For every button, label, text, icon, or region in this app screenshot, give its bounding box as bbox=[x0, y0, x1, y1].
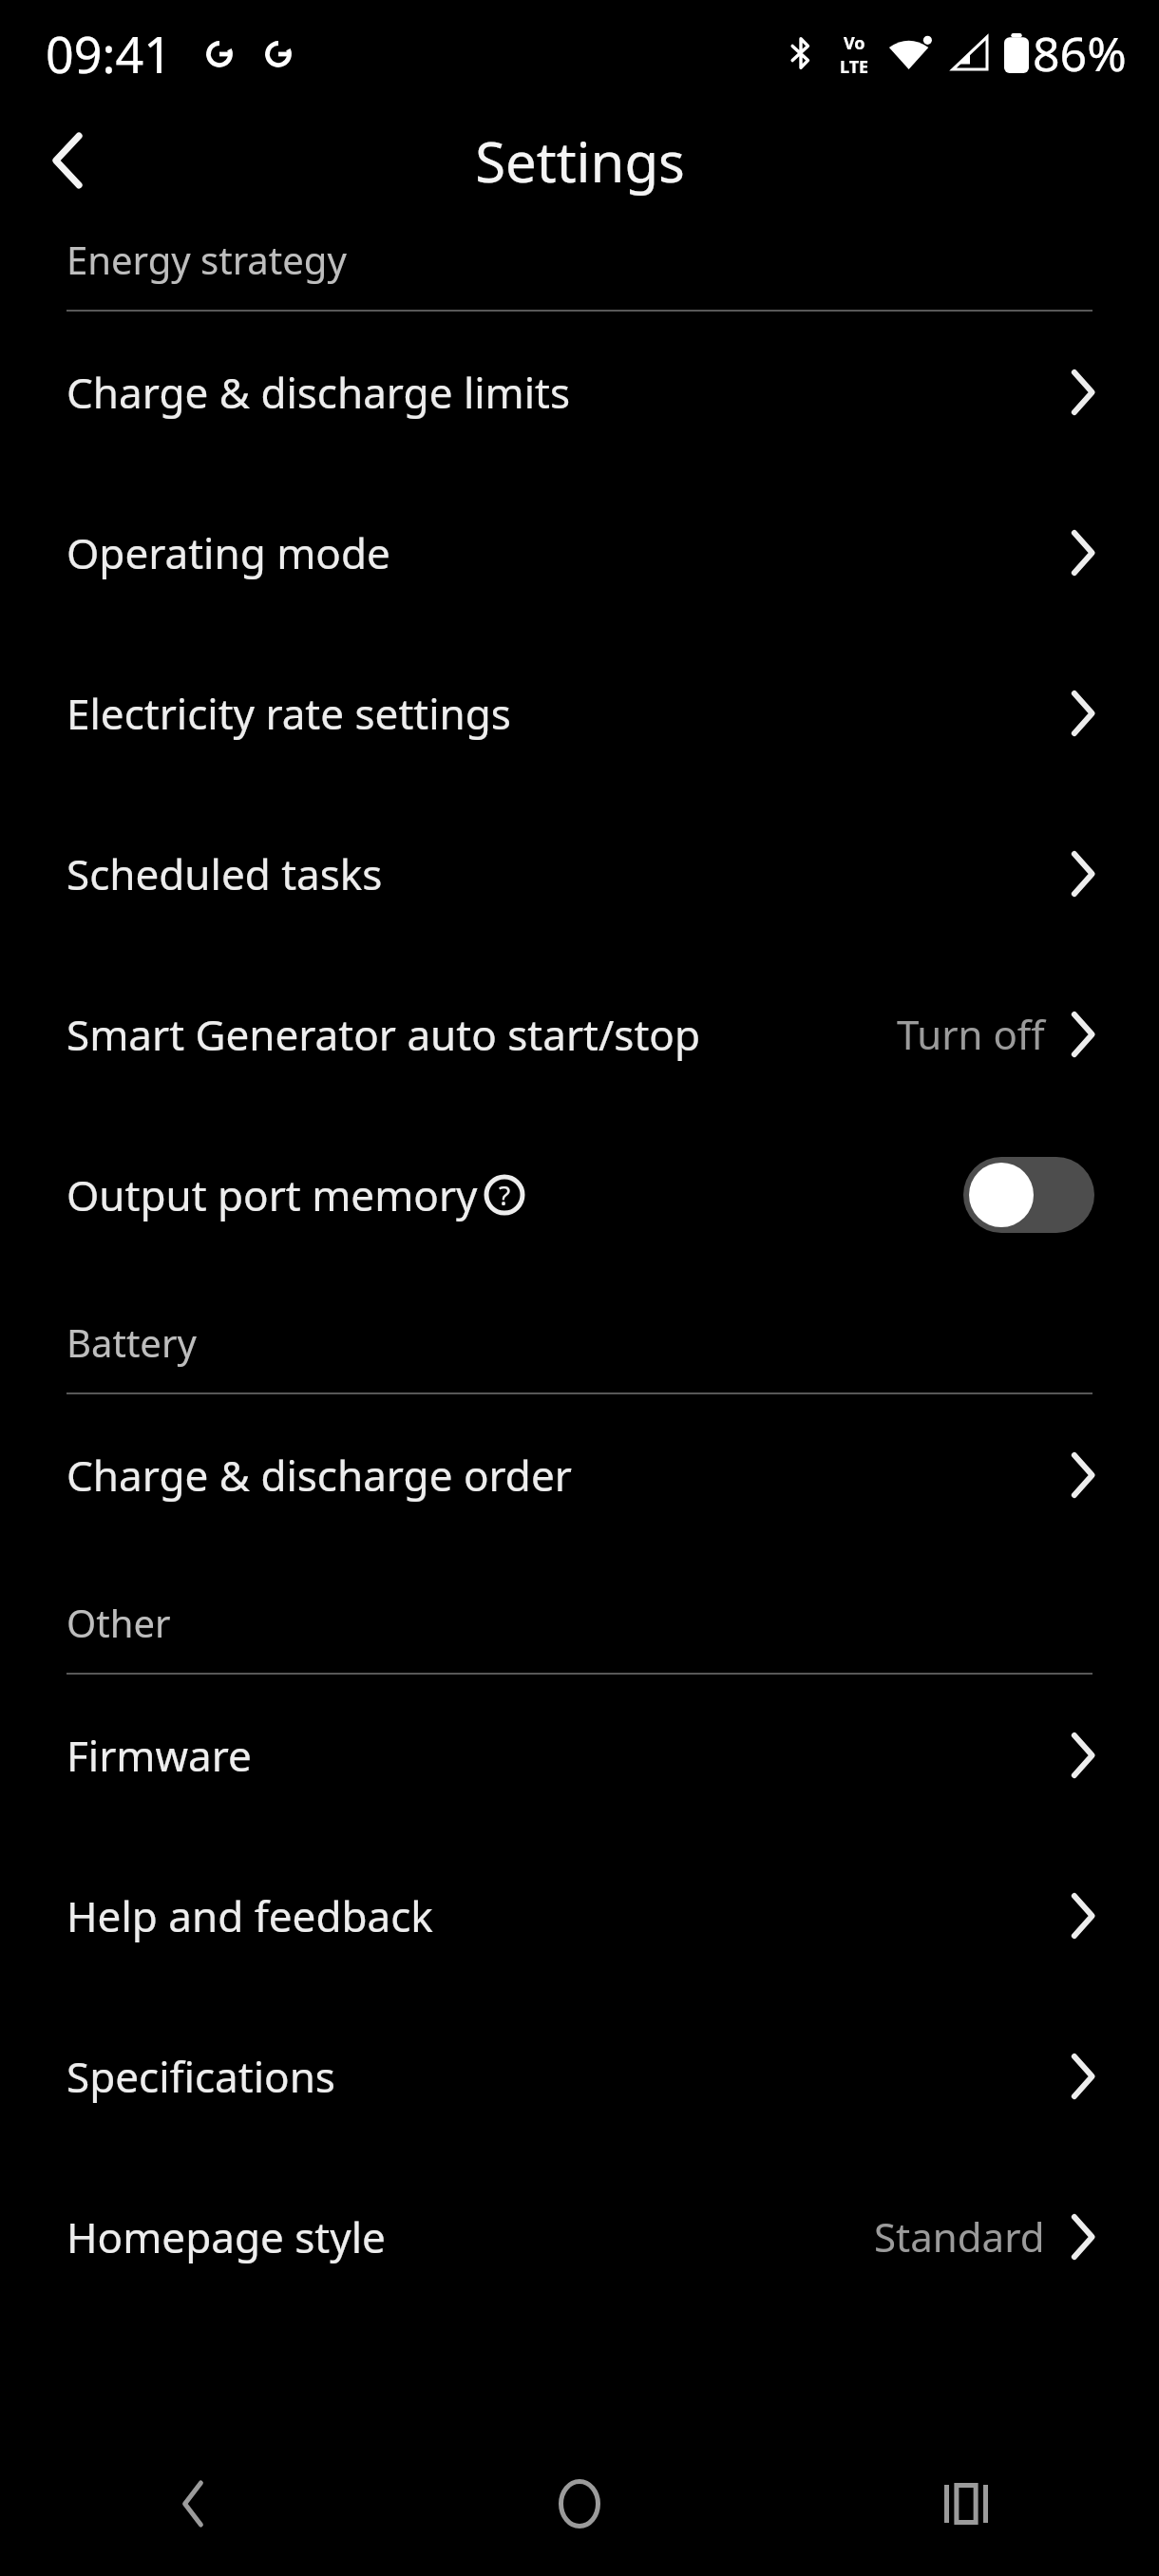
staticText: Electricity rate settings bbox=[66, 685, 511, 742]
staticText: Scheduled tasks bbox=[66, 845, 383, 902]
staticText: Battery bbox=[66, 1316, 197, 1368]
button[interactable]: Operating mode bbox=[0, 472, 1159, 633]
button[interactable]: Scheduled tasks bbox=[0, 793, 1159, 954]
button[interactable]: Smart Generator auto start/stop bbox=[0, 954, 1159, 1114]
button[interactable]: Recent apps bbox=[772, 2432, 1159, 2576]
staticText: Specifications bbox=[66, 2048, 335, 2105]
staticText: Homepage style bbox=[66, 2208, 386, 2265]
button[interactable]: Back bbox=[19, 112, 116, 209]
staticText: Firmware bbox=[66, 1727, 252, 1784]
staticText: Other bbox=[66, 1597, 171, 1648]
staticText: Vo bbox=[844, 31, 865, 55]
staticText: Standard bbox=[874, 2209, 1045, 2263]
staticText: 09:41 bbox=[46, 20, 172, 87]
button[interactable]: Electricity rate settings bbox=[0, 633, 1159, 793]
staticText: Settings bbox=[475, 123, 685, 199]
staticText: Output port memory bbox=[66, 1166, 478, 1223]
button[interactable]: Charge & discharge order bbox=[0, 1394, 1159, 1555]
button[interactable]: Output port memory bbox=[0, 1114, 1159, 1275]
staticText: Charge & discharge order bbox=[66, 1447, 572, 1504]
button[interactable]: Firmware bbox=[0, 1675, 1159, 1835]
staticText: Operating mode bbox=[66, 524, 390, 581]
button[interactable]: Help and feedback bbox=[0, 1835, 1159, 1996]
button[interactable]: Back bbox=[0, 2432, 386, 2576]
staticText: Turn off bbox=[897, 1007, 1045, 1061]
staticText: Energy strategy bbox=[66, 234, 347, 285]
staticText: ? bbox=[499, 1177, 511, 1213]
button[interactable]: Specifications bbox=[0, 1996, 1159, 2156]
button[interactable]: Homepage style bbox=[0, 2156, 1159, 2317]
button[interactable]: Output port memory toggle bbox=[963, 1157, 1094, 1233]
staticText: Help and feedback bbox=[66, 1887, 433, 1944]
staticText: LTE bbox=[840, 55, 869, 75]
button[interactable]: Charge & discharge limits bbox=[0, 312, 1159, 472]
staticText: Charge & discharge limits bbox=[66, 364, 571, 421]
staticText: Smart Generator auto start/stop bbox=[66, 1006, 700, 1063]
staticText: 86% bbox=[1033, 21, 1127, 85]
button[interactable]: Home bbox=[386, 2432, 772, 2576]
